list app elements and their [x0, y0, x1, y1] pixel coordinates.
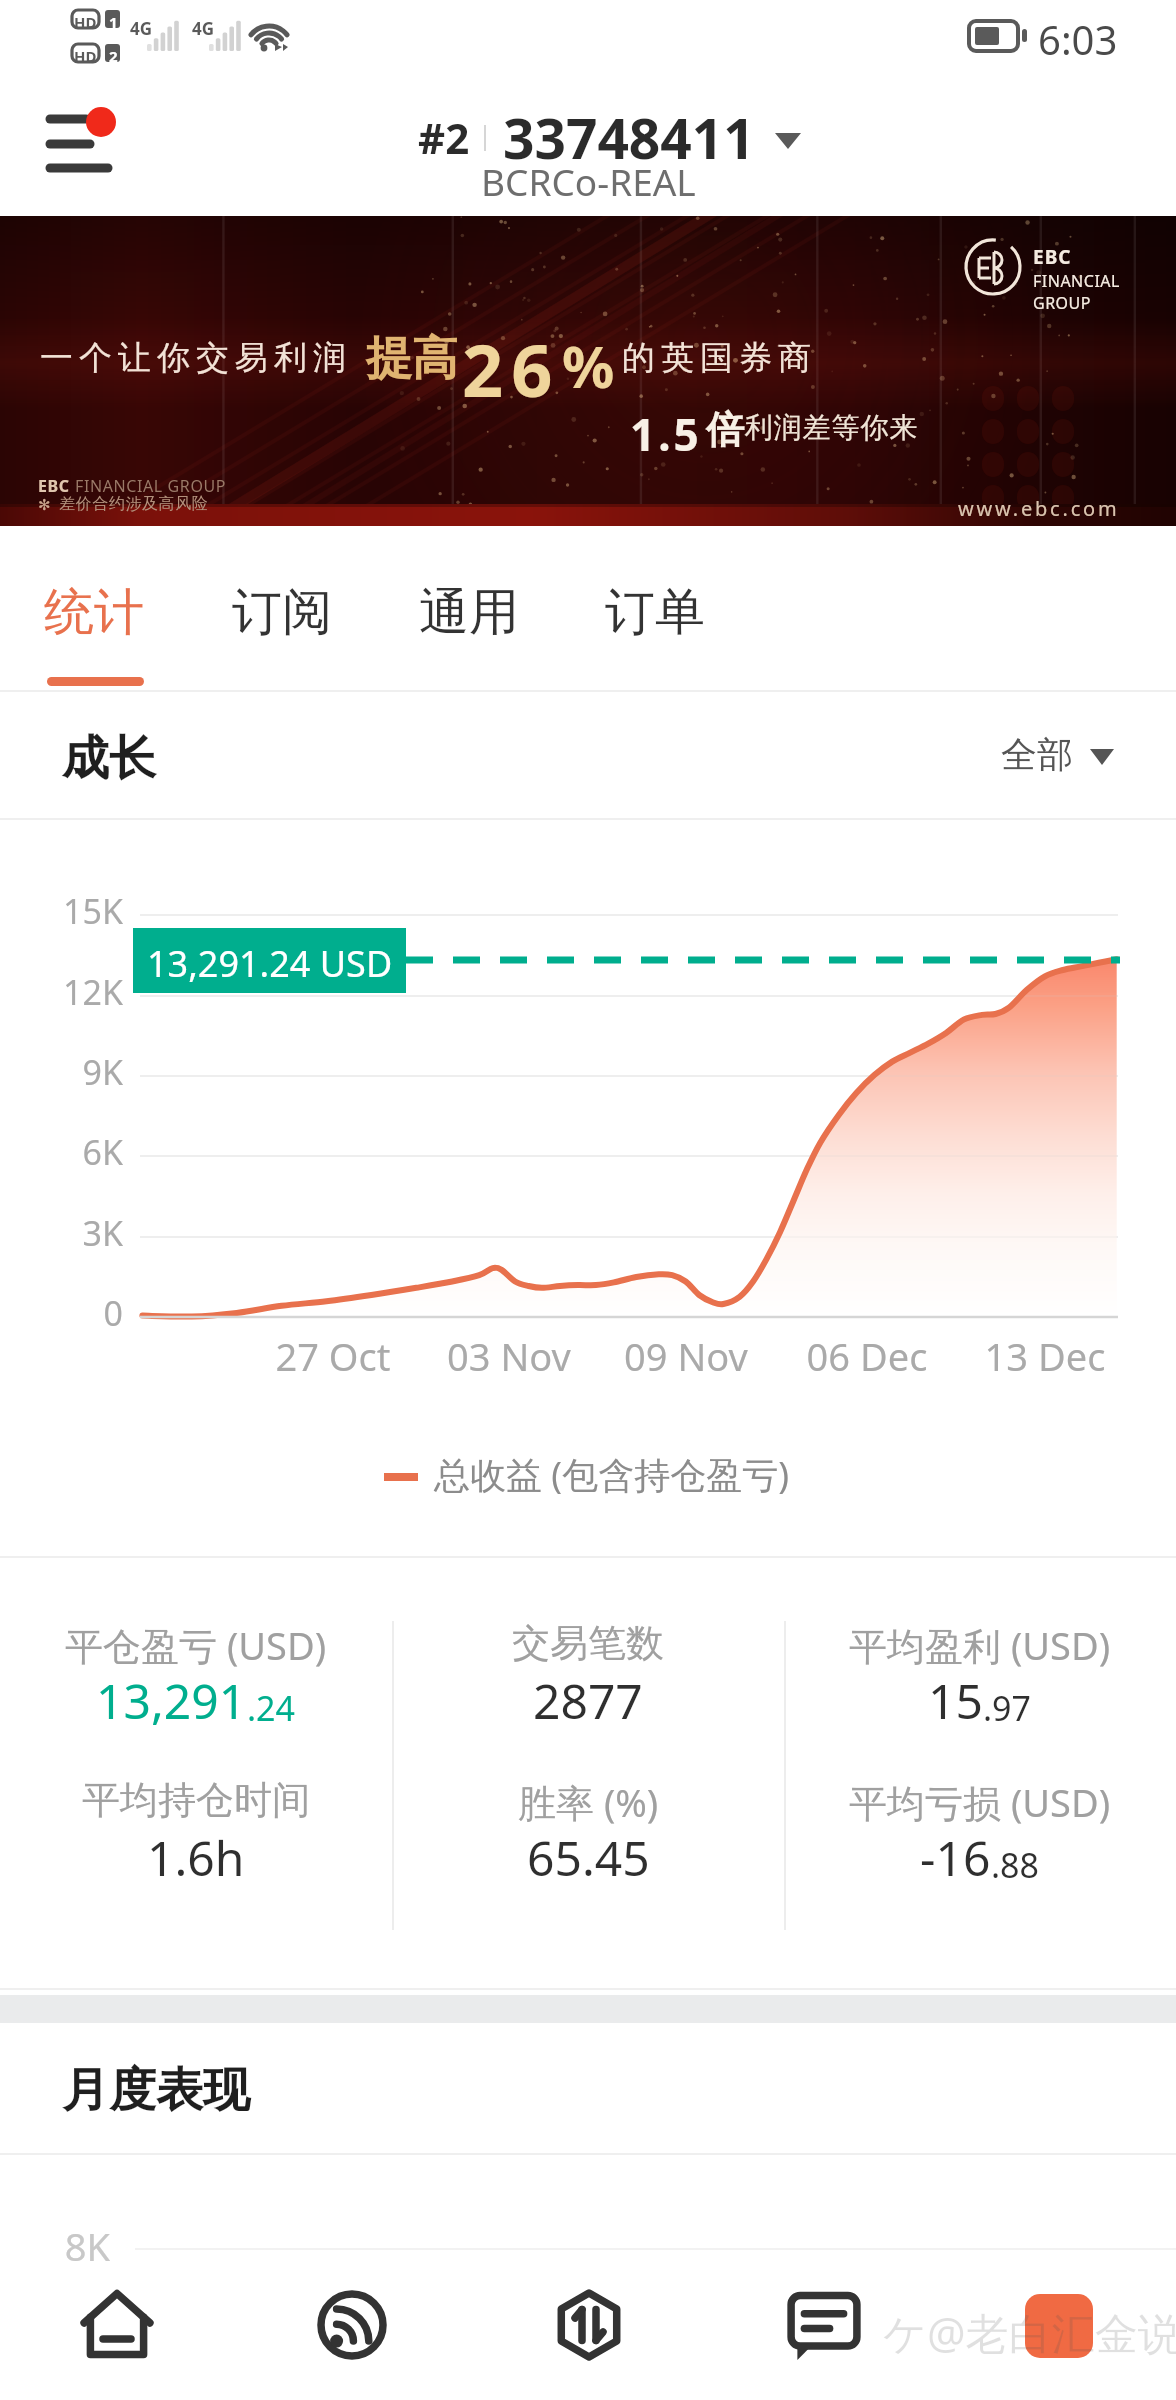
staticText: 月度表现	[62, 2061, 250, 2120]
staticText: .88	[991, 1842, 1040, 1888]
staticText: 33748411	[503, 100, 755, 175]
staticText: 13,291.24 USD	[147, 939, 393, 988]
staticText: 平均持仓时间	[82, 1776, 310, 1824]
staticText: 8K	[0, 2220, 110, 2272]
button[interactable]: 订单	[562, 526, 748, 686]
button[interactable]: Advertisement banner	[0, 216, 1176, 526]
staticText: ケ@老白汇金说	[883, 2303, 1176, 2362]
staticText: EBC	[38, 475, 70, 497]
staticText: 1.6h	[147, 1825, 245, 1890]
staticText: www.ebc.com	[958, 495, 1120, 522]
staticText: EBC	[1033, 244, 1072, 270]
staticText: HD	[74, 46, 97, 66]
staticText: 胜率 (%)	[518, 1776, 659, 1828]
staticText: 提高	[366, 330, 458, 388]
button[interactable]: Signals	[292, 2265, 412, 2385]
button[interactable]: 平均盈利 (USD)	[784, 1598, 1176, 1738]
staticText: 13,291	[96, 1668, 247, 1733]
button[interactable]: 平均持仓时间	[0, 1755, 392, 1895]
staticText: 订阅	[232, 581, 332, 644]
button[interactable]: Profile	[1025, 2294, 1093, 2358]
staticText: GROUP	[1033, 292, 1091, 314]
staticText: %	[562, 326, 615, 405]
staticText: 平均盈利 (USD)	[849, 1619, 1111, 1671]
staticText: .97	[983, 1685, 1032, 1731]
staticText: 09 Nov	[596, 1330, 776, 1382]
staticText: 全部	[1001, 732, 1073, 777]
staticText: -16	[920, 1825, 991, 1890]
staticText: 平均亏损 (USD)	[849, 1776, 1111, 1828]
staticText: 4G	[192, 17, 215, 40]
staticText: 总收益 (包含持仓盈亏)	[434, 1450, 789, 1499]
staticText: 倍	[706, 406, 744, 454]
staticText: 1	[109, 12, 118, 32]
button[interactable]: 全部	[1001, 732, 1114, 777]
staticText: 9K	[0, 1049, 123, 1095]
button[interactable]: Home	[57, 2265, 177, 2385]
staticText: 交易笔数	[512, 1619, 664, 1667]
staticText: 的英国券商	[619, 337, 814, 379]
staticText: HD	[74, 12, 97, 32]
staticText: 平仓盈亏 (USD)	[65, 1619, 327, 1671]
staticText: 06 Dec	[777, 1330, 957, 1382]
staticText: 利润差等你来	[744, 410, 918, 445]
staticText: 13 Dec	[955, 1330, 1135, 1382]
staticText: 一个让你交易利润	[37, 337, 349, 379]
staticText: 12K	[0, 969, 123, 1015]
staticText: 27 Oct	[243, 1330, 423, 1382]
button[interactable]: 订阅	[189, 526, 375, 686]
staticText: 4G	[130, 17, 153, 40]
staticText: 0	[0, 1290, 123, 1336]
staticText: 65.45	[527, 1825, 650, 1890]
button[interactable]: 通用	[376, 526, 562, 686]
staticText: BCRCo-REAL	[481, 156, 696, 206]
staticText: 15	[928, 1668, 983, 1733]
staticText: 成长	[62, 729, 156, 788]
staticText: #2	[418, 109, 470, 166]
staticText: 2	[109, 46, 118, 66]
staticText: 6:03	[1038, 12, 1118, 66]
staticText: 6K	[0, 1129, 123, 1175]
staticText: 1.5	[630, 404, 702, 464]
staticText: 15K	[0, 888, 123, 934]
staticText: FINANCIAL GROUP	[75, 475, 227, 497]
staticText: 通用	[419, 581, 519, 644]
button[interactable]: 平仓盈亏 (USD)	[0, 1598, 392, 1738]
button[interactable]: 统计	[1, 526, 187, 686]
staticText: FINANCIAL	[1033, 270, 1120, 292]
staticText: 统计	[44, 581, 144, 644]
staticText: 03 Nov	[419, 1330, 599, 1382]
staticText: 2877	[533, 1668, 643, 1733]
staticText: 订单	[605, 581, 705, 644]
button[interactable]: Messages	[764, 2265, 884, 2385]
staticText: .24	[247, 1685, 296, 1731]
button[interactable]: 平均亏损 (USD)	[784, 1755, 1176, 1895]
staticText: ✻	[38, 496, 51, 513]
staticText: 26	[462, 320, 561, 418]
button[interactable]: Menu	[34, 102, 134, 182]
staticText: 差价合约涉及高风险	[59, 494, 209, 514]
button[interactable]: 交易笔数	[392, 1598, 784, 1738]
staticText: 3K	[0, 1210, 123, 1256]
button[interactable]: 胜率 (%)	[392, 1755, 784, 1895]
button[interactable]: Trade	[529, 2265, 649, 2385]
